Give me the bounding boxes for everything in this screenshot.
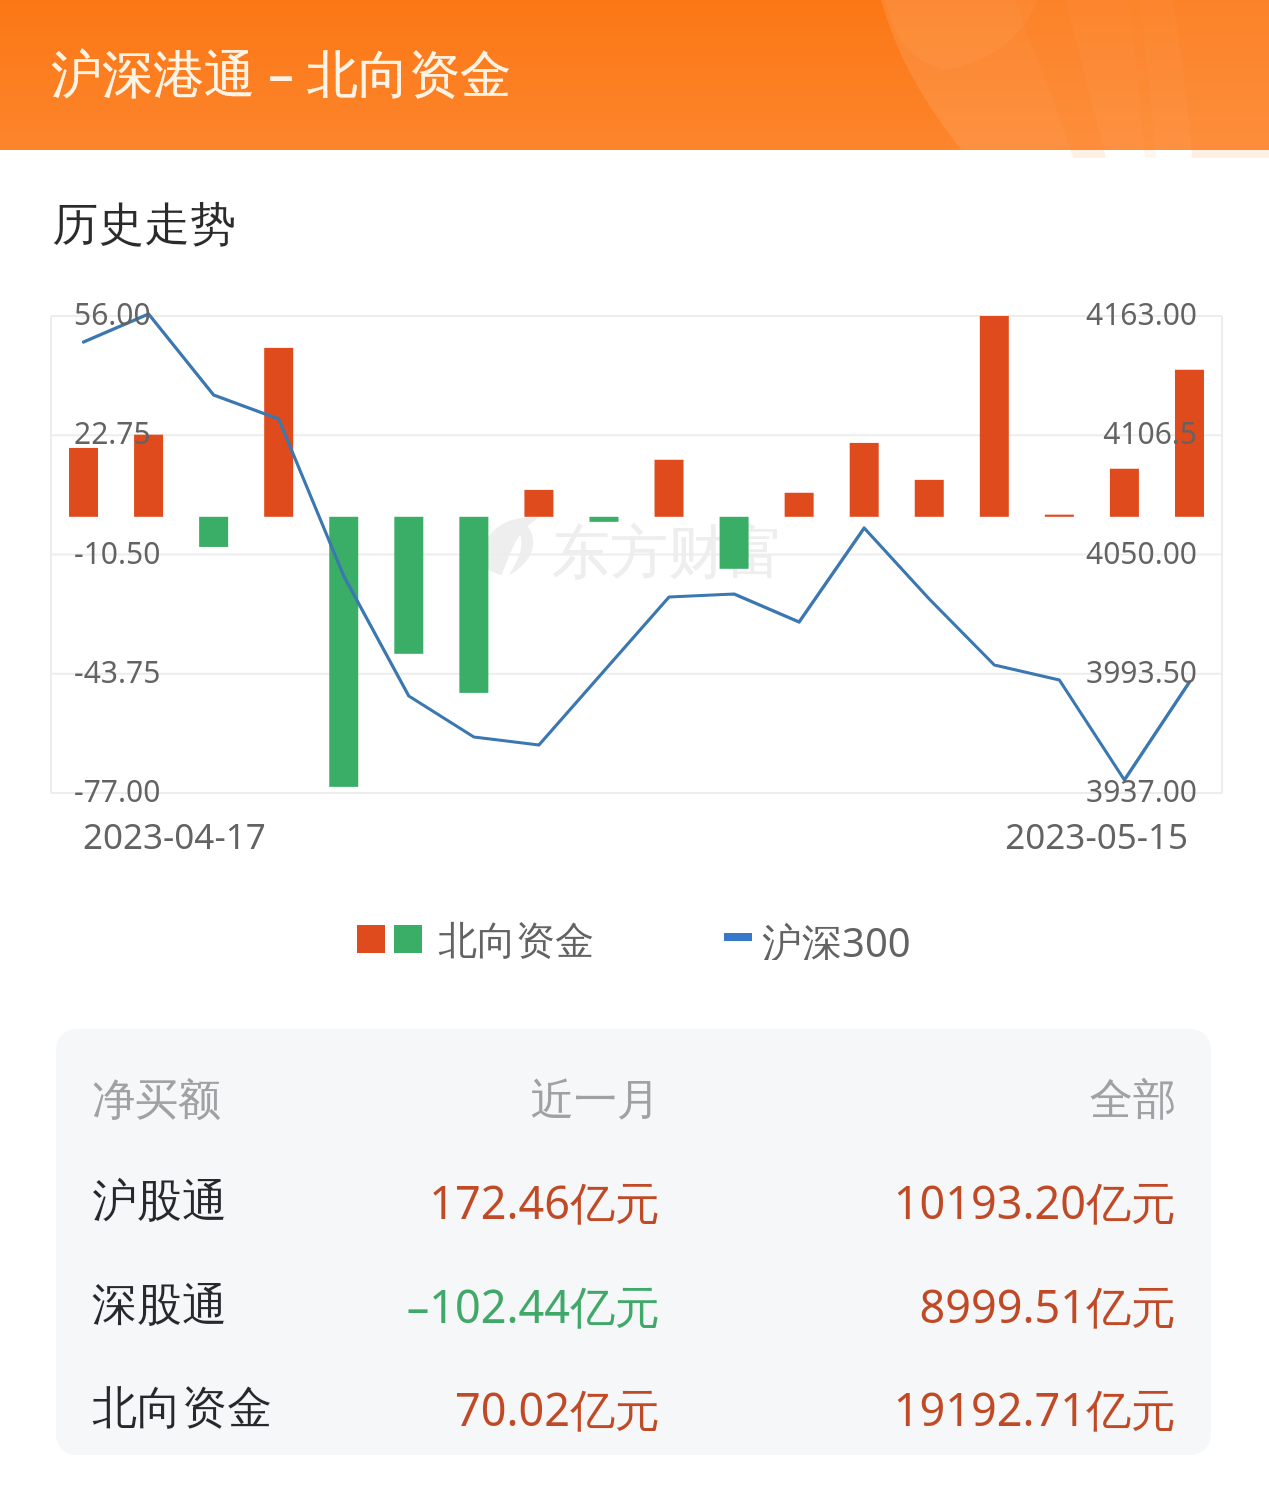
button[interactable]: 北向资金 (357, 916, 594, 962)
button[interactable]: 历史走势图表 (51, 300, 1222, 805)
staticText: 3993.50 (950, 651, 1197, 692)
button[interactable]: 沪股通 (56, 1149, 1211, 1253)
staticText: 北向资金 (438, 916, 594, 962)
staticText: 56.00 (74, 293, 151, 334)
staticText: -77.00 (74, 770, 161, 811)
staticText: 22.75 (74, 412, 151, 453)
button[interactable]: 深股通 (56, 1253, 1211, 1357)
button[interactable]: 沪深港通 – 北向资金 (0, 0, 1269, 150)
button[interactable]: 沪深300 (724, 914, 911, 960)
staticText: 2023-05-15 (900, 812, 1188, 860)
staticText: 净买额 (92, 1073, 392, 1127)
staticText: 4050.00 (950, 532, 1197, 573)
staticText: 3937.00 (950, 770, 1197, 811)
staticText: 4163.00 (950, 293, 1197, 334)
staticText: -10.50 (74, 532, 161, 573)
staticText: 沪深港通 – 北向资金 (51, 37, 512, 107)
staticText: 19192.71亿元 (660, 1378, 1176, 1439)
staticText: 4106.5 (950, 412, 1197, 453)
staticText: 东方财富 (552, 516, 784, 589)
staticText: –102.44亿元 (356, 1275, 660, 1336)
staticText: 10193.20亿元 (660, 1171, 1176, 1232)
staticText: 全部 (660, 1073, 1176, 1127)
staticText: 沪深300 (762, 914, 911, 960)
staticText: 2023-04-17 (83, 812, 266, 860)
staticText: 历史走势 (52, 196, 236, 254)
staticText: 深股通 (92, 1277, 392, 1334)
staticText: 北向资金 (92, 1380, 392, 1437)
staticText: 近一月 (356, 1073, 660, 1127)
staticText: 8999.51亿元 (660, 1275, 1176, 1336)
button[interactable]: 北向资金 (56, 1356, 1211, 1455)
button[interactable]: 净买额 (56, 1048, 1211, 1152)
staticText: 172.46亿元 (356, 1171, 660, 1232)
staticText: 70.02亿元 (356, 1378, 660, 1439)
staticText: -43.75 (74, 651, 161, 692)
staticText: 沪股通 (92, 1173, 392, 1230)
